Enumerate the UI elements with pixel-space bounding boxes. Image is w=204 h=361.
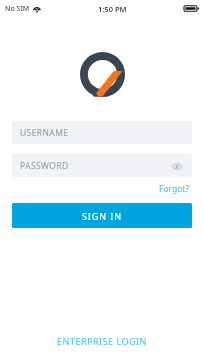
staticText: USERNAME: [20, 127, 69, 139]
staticText: SIGN IN: [82, 210, 122, 222]
staticText: 1:50 PM: [98, 4, 127, 14]
button[interactable]: PASSWORD: [12, 154, 192, 177]
button[interactable]: ENTERPRISE LOGIN: [0, 331, 204, 351]
button[interactable]: Show password: [170, 159, 184, 173]
staticText: Forgot?: [159, 183, 190, 195]
staticText: No SIM: [5, 4, 30, 14]
button[interactable]: USERNAME: [12, 121, 192, 144]
staticText: PASSWORD: [20, 160, 69, 172]
button[interactable]: Forgot?: [157, 182, 192, 196]
staticText: ENTERPRISE LOGIN: [57, 335, 147, 347]
button[interactable]: SIGN IN: [12, 203, 192, 228]
